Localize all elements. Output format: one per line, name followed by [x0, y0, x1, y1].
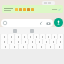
button[interactable] [1, 39, 7, 44]
button[interactable] [2, 5, 63, 13]
button[interactable] [22, 39, 28, 44]
button[interactable] [15, 39, 21, 44]
button[interactable] [58, 34, 63, 39]
button[interactable] [22, 34, 27, 39]
button[interactable] [1, 44, 9, 49]
button[interactable] [30, 29, 34, 33]
button[interactable] [52, 34, 57, 39]
button[interactable]: Voice message [54, 18, 63, 27]
button[interactable] [19, 44, 27, 49]
button[interactable]: Attach [39, 21, 43, 25]
button[interactable] [46, 34, 51, 39]
button[interactable] [8, 39, 14, 44]
button[interactable] [13, 29, 17, 33]
button[interactable] [40, 34, 45, 39]
button[interactable] [28, 34, 33, 39]
button[interactable]: Camera [46, 21, 51, 26]
button[interactable] [50, 39, 56, 44]
button[interactable] [57, 39, 63, 44]
button[interactable] [55, 44, 63, 49]
button[interactable] [28, 44, 36, 49]
button[interactable]: Emoji [1, 19, 53, 27]
button[interactable] [42, 1, 55, 5]
button[interactable] [37, 44, 45, 49]
button[interactable] [15, 34, 21, 39]
button[interactable] [34, 34, 39, 39]
button[interactable] [10, 44, 18, 49]
button[interactable] [8, 34, 14, 39]
button[interactable]: Emoji [3, 21, 7, 25]
button[interactable] [43, 39, 49, 44]
button[interactable] [1, 34, 7, 39]
button[interactable] [36, 39, 42, 44]
button[interactable] [46, 44, 54, 49]
button[interactable] [29, 39, 35, 44]
